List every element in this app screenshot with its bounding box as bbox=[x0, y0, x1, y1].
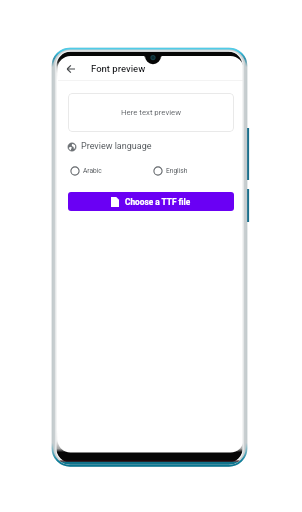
button[interactable]: Back bbox=[61, 59, 80, 78]
staticText: Here text preview bbox=[121, 108, 182, 117]
staticText: Font preview bbox=[91, 63, 146, 74]
button[interactable]: English bbox=[153, 166, 188, 176]
button[interactable]: Preview language bbox=[67, 141, 152, 152]
staticText: Arabic bbox=[83, 167, 102, 175]
button[interactable]: Arabic bbox=[70, 166, 102, 176]
staticText: English bbox=[166, 167, 188, 175]
button[interactable]: Choose a TTF file bbox=[68, 192, 234, 211]
staticText: Choose a TTF file bbox=[125, 197, 191, 207]
staticText: Preview language bbox=[81, 141, 152, 152]
